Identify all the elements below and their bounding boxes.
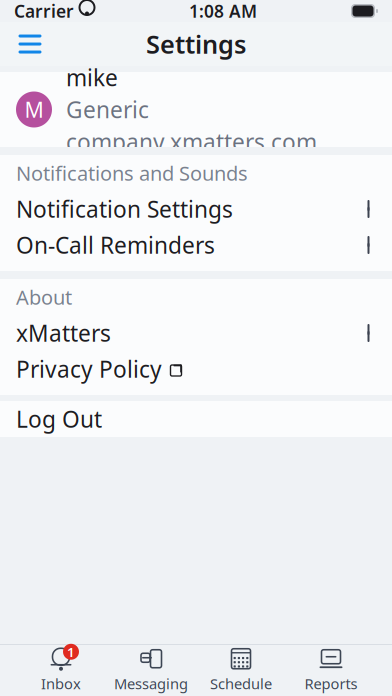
button[interactable]: Log Out — [0, 401, 392, 437]
staticText: Generic — [66, 94, 149, 124]
staticText: Inbox — [41, 674, 81, 693]
staticText: company.xmatters.com — [66, 127, 317, 157]
button[interactable]: On-Call Reminders — [0, 227, 392, 263]
staticText: Notification Settings — [16, 194, 233, 224]
button[interactable]: Privacy Policy — [0, 351, 392, 387]
button[interactable]: Schedule — [196, 647, 286, 693]
staticText: 1:08 AM — [189, 0, 257, 22]
button[interactable]: xMatters — [0, 315, 392, 351]
button[interactable]: Menu — [8, 22, 52, 66]
staticText: Privacy Policy — [16, 354, 162, 384]
staticText: Carrier — [14, 0, 74, 22]
staticText: mike — [66, 62, 118, 92]
staticText: Reports — [304, 674, 357, 693]
staticText: Schedule — [210, 674, 272, 693]
staticText: Settings — [146, 27, 246, 61]
staticText: 1 — [67, 643, 75, 661]
button[interactable]: M — [0, 72, 392, 147]
staticText: Log Out — [16, 404, 102, 434]
staticText: M — [24, 95, 43, 124]
button[interactable]: Messaging — [106, 647, 196, 693]
button[interactable]: 1 — [16, 647, 106, 693]
staticText: Notifications and Sounds — [16, 160, 248, 186]
staticText: About — [16, 284, 72, 310]
staticText: xMatters — [16, 318, 111, 348]
staticText: Messaging — [114, 674, 188, 693]
button[interactable]: Reports — [286, 647, 376, 693]
button[interactable]: Notification Settings — [0, 191, 392, 227]
staticText: On-Call Reminders — [16, 230, 215, 260]
